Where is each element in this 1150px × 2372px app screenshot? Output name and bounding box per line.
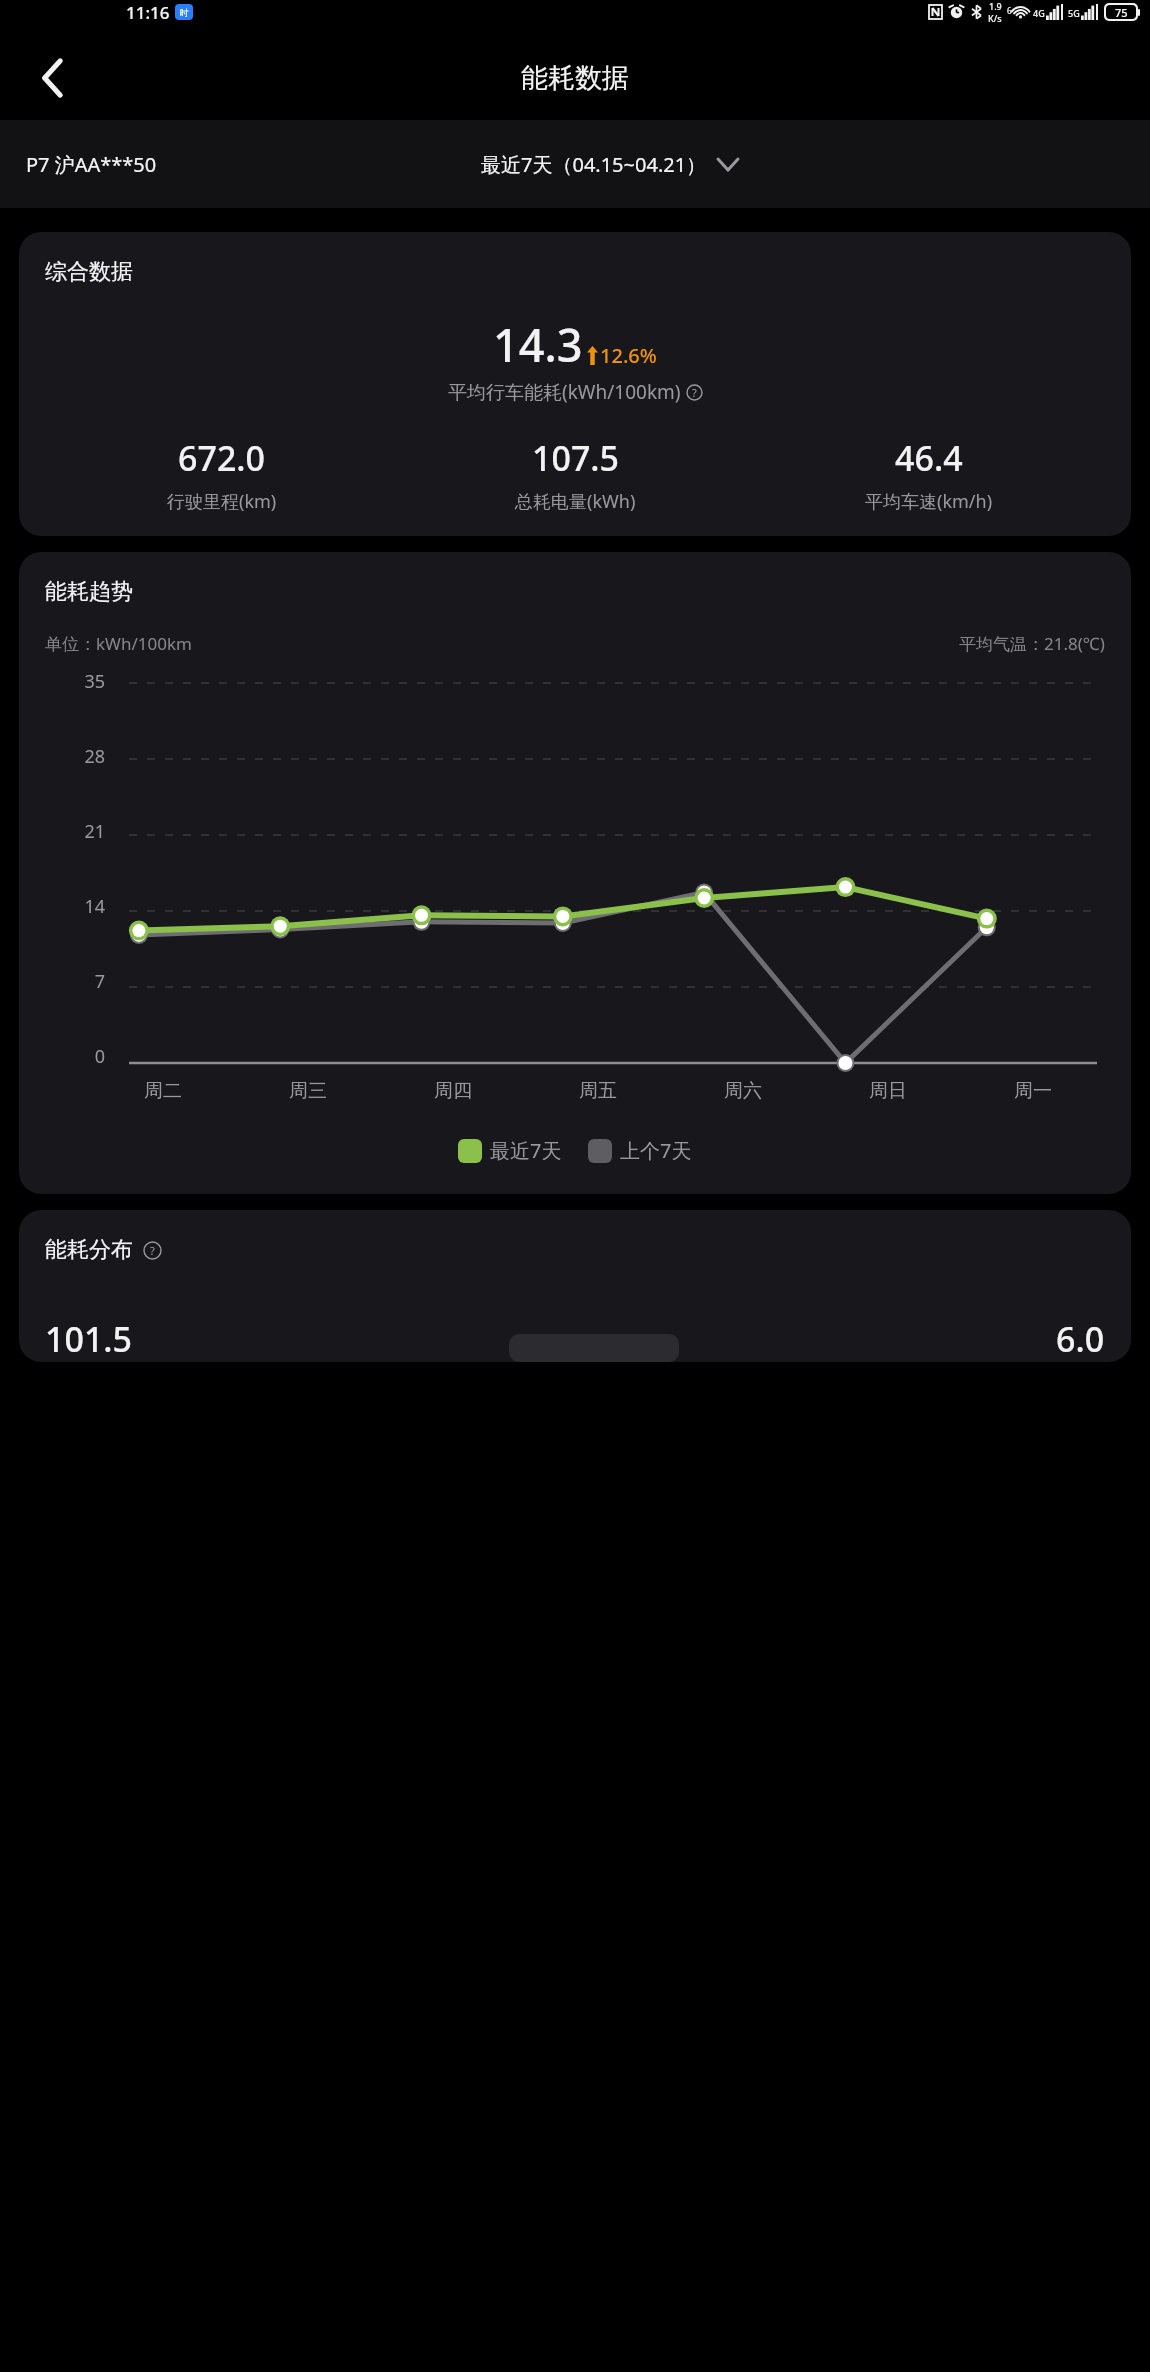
staticText: 6 (1007, 5, 1012, 16)
button[interactable]: 最近7天（04.15~04.21） (481, 151, 739, 178)
staticText: 14.3 (493, 314, 583, 375)
staticText: 周一 (1014, 1079, 1052, 1103)
staticText: 11:16 (126, 1, 170, 24)
staticText: 672.0 (178, 435, 266, 481)
staticText: 4G (1033, 7, 1045, 19)
staticText: 平均行车能耗(kWh/100km) (448, 379, 681, 405)
staticText: K/s (988, 12, 1002, 24)
staticText: 能耗数据 (521, 61, 629, 95)
staticText: 28 (84, 744, 105, 769)
staticText: 综合数据 (45, 258, 133, 286)
staticText: 12.6% (600, 342, 657, 369)
staticText: 平均气温：21.8(℃) (959, 632, 1105, 655)
staticText: 101.5 (45, 1316, 133, 1362)
staticText: ? (692, 385, 697, 400)
staticText: 周二 (144, 1079, 182, 1103)
staticText: 能耗趋势 (45, 578, 133, 606)
staticText: 107.5 (532, 435, 620, 481)
staticText: 周四 (434, 1079, 472, 1103)
staticText: 行驶里程(km) (167, 489, 277, 514)
staticText: 0 (94, 1044, 105, 1069)
staticText: 6.0 (1056, 1316, 1105, 1362)
button[interactable]: 能耗趋势 (19, 552, 1131, 1194)
staticText: 能耗分布 (45, 1236, 133, 1264)
staticText: 周日 (869, 1079, 907, 1103)
staticText: 最近7天 (490, 1137, 562, 1164)
staticText: 周五 (579, 1079, 617, 1103)
staticText: 周六 (724, 1079, 762, 1103)
staticText: ? (150, 1243, 155, 1258)
button[interactable]: 能耗分布 (19, 1210, 1131, 1362)
staticText: 75 (1115, 5, 1128, 19)
staticText: 7 (94, 969, 105, 994)
button[interactable]: 综合数据 (19, 232, 1131, 536)
staticText: 5G (1068, 7, 1080, 19)
staticText: 总耗电量(kWh) (515, 489, 636, 514)
staticText: 上个7天 (620, 1137, 692, 1164)
staticText: 单位：kWh/100km (45, 632, 192, 655)
staticText: 21 (84, 819, 105, 844)
staticText: 最近7天（04.15~04.21） (481, 151, 707, 178)
button[interactable]: Back (26, 51, 80, 105)
staticText: 1.9 (989, 0, 1002, 12)
staticText: P7 沪AA***50 (26, 151, 157, 178)
staticText: 35 (84, 669, 105, 694)
staticText: 时 (180, 7, 189, 18)
staticText: 46.4 (895, 435, 963, 481)
staticText: 14 (84, 894, 105, 919)
staticText: 平均车速(km/h) (865, 489, 993, 514)
staticText: 周三 (289, 1079, 327, 1103)
